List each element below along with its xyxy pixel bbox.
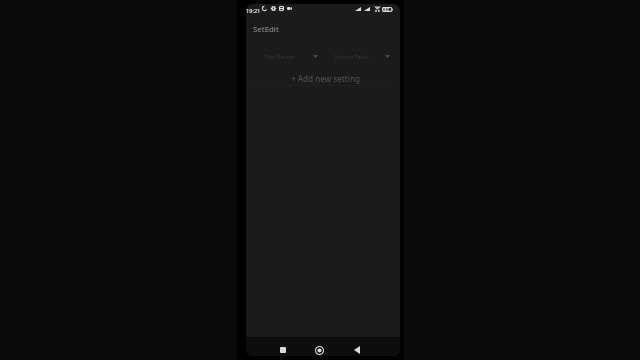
staticText: 19:21 [246, 7, 261, 15]
button[interactable] [322, 49, 384, 64]
button[interactable]: + Add new setting [248, 71, 400, 85]
staticText: SetEdit [253, 24, 279, 34]
button[interactable]: Back [349, 342, 365, 356]
staticText: + Add new setting [291, 73, 360, 84]
staticText: This Device [264, 53, 294, 61]
button[interactable] [252, 49, 314, 64]
button[interactable]: Home [311, 342, 327, 356]
staticText: System Table [334, 53, 369, 61]
button[interactable]: Recents [275, 342, 291, 356]
